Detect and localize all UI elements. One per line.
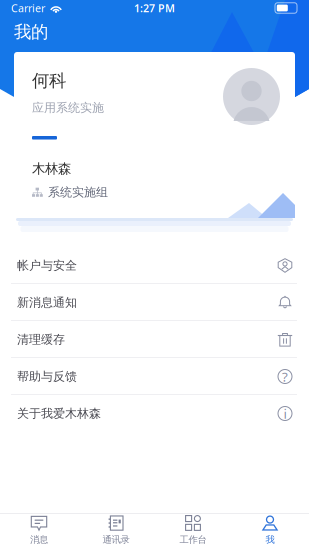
- staticText: 帮助与反馈: [17, 369, 77, 384]
- staticText: Carrier: [11, 1, 45, 15]
- button[interactable]: 消息: [0, 514, 77, 550]
- staticText: 工作台: [179, 534, 206, 545]
- staticText: 应用系统实施: [32, 100, 104, 115]
- staticText: 清理缓存: [17, 332, 65, 347]
- staticText: 1:27 PM: [134, 1, 175, 15]
- staticText: 消息: [30, 534, 48, 545]
- button[interactable]: 关于我爱木林森: [0, 395, 309, 432]
- button[interactable]: 新消息通知: [0, 284, 309, 321]
- staticText: 木林森: [32, 160, 71, 177]
- button[interactable]: 通讯录: [77, 514, 154, 550]
- button[interactable]: 我: [231, 514, 308, 550]
- staticText: i: [283, 405, 286, 422]
- staticText: 通讯录: [102, 534, 129, 545]
- button[interactable]: 帐户与安全: [0, 247, 309, 284]
- staticText: 新消息通知: [17, 295, 77, 310]
- staticText: 何科: [32, 70, 66, 91]
- staticText: ?: [282, 368, 288, 385]
- button[interactable]: 何科: [14, 52, 295, 218]
- button[interactable]: 工作台: [154, 514, 231, 550]
- staticText: 帐户与安全: [17, 258, 77, 273]
- button[interactable]: 帮助与反馈: [0, 358, 309, 395]
- staticText: 系统实施组: [48, 185, 108, 200]
- button[interactable]: 清理缓存: [0, 321, 309, 358]
- staticText: 我的: [14, 21, 48, 43]
- staticText: 关于我爱木林森: [17, 406, 101, 421]
- staticText: 我: [265, 534, 274, 545]
